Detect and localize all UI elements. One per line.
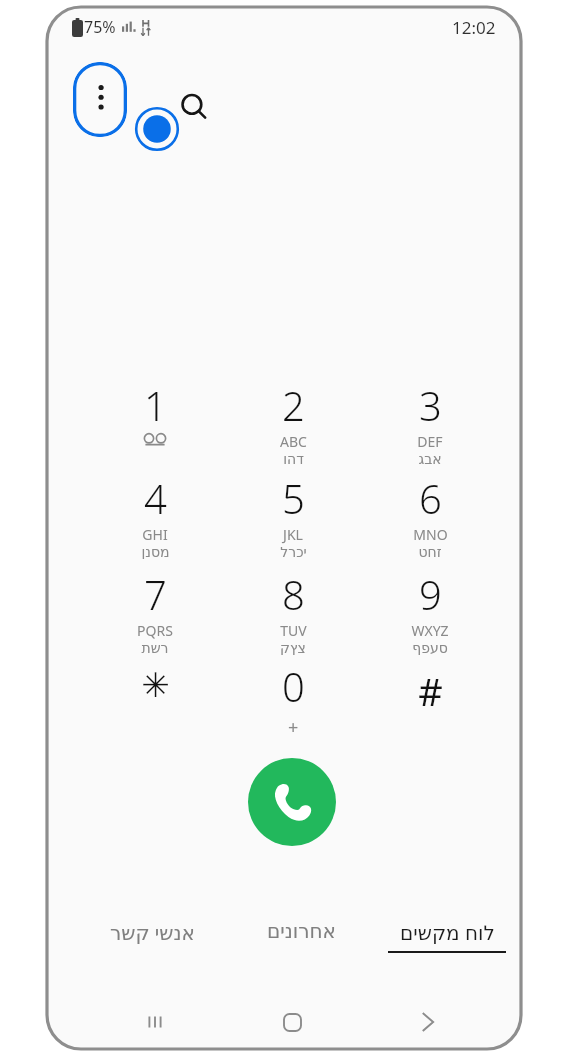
- button[interactable]: 8: [231, 567, 355, 655]
- staticText: 75%: [84, 16, 116, 38]
- button[interactable]: 1: [93, 378, 217, 466]
- staticText: מסנן: [141, 544, 170, 559]
- staticText: יכרל: [280, 544, 307, 559]
- staticText: PQRS: [137, 621, 173, 640]
- staticText: 8: [282, 567, 305, 621]
- button[interactable]: 2: [231, 378, 355, 466]
- staticText: WXYZ: [411, 621, 449, 640]
- staticText: ABC: [280, 432, 307, 451]
- button[interactable]: Recents: [129, 1000, 181, 1044]
- button[interactable]: 7: [93, 567, 217, 655]
- button[interactable]: Home: [266, 1000, 318, 1044]
- staticText: 9: [419, 567, 442, 621]
- staticText: DEF: [417, 432, 443, 451]
- button[interactable]: 3: [368, 378, 492, 466]
- staticText: 6: [419, 471, 442, 525]
- button[interactable]: לוח מקשים: [377, 919, 517, 971]
- staticText: MNO: [413, 525, 448, 544]
- button[interactable]: More options: [73, 62, 127, 137]
- button[interactable]: 4: [93, 471, 217, 559]
- staticText: לוח מקשים: [400, 919, 495, 946]
- staticText: אחרונים: [267, 919, 336, 942]
- staticText: סעפף: [412, 640, 448, 655]
- staticText: אבג: [418, 451, 442, 466]
- staticText: 0: [282, 659, 305, 713]
- button[interactable]: אנשי קשר: [77, 919, 227, 963]
- staticText: אנשי קשר: [110, 919, 195, 946]
- staticText: 4: [144, 471, 167, 525]
- button[interactable]: Back: [402, 1000, 454, 1044]
- staticText: 12:02: [452, 16, 496, 39]
- button[interactable]: אחרונים: [237, 919, 365, 963]
- staticText: 7: [144, 567, 167, 621]
- staticText: דהו: [283, 451, 304, 466]
- staticText: 2: [282, 378, 305, 432]
- staticText: זחט: [418, 544, 442, 559]
- staticText: +: [288, 715, 299, 740]
- button[interactable]: 0: [231, 659, 355, 747]
- staticText: JKL: [283, 525, 303, 544]
- button[interactable]: 6: [368, 471, 492, 559]
- staticText: TUV: [280, 621, 307, 640]
- staticText: GHI: [142, 525, 168, 544]
- staticText: צץק: [280, 640, 306, 655]
- button[interactable]: Call: [248, 758, 336, 846]
- staticText: 5: [282, 471, 305, 525]
- button[interactable]: ✳: [93, 659, 217, 747]
- staticText: רשת: [141, 640, 169, 655]
- button[interactable]: Search: [173, 86, 215, 128]
- staticText: #: [418, 665, 443, 717]
- staticText: 1: [144, 378, 167, 432]
- staticText: ✳: [141, 665, 170, 705]
- staticText: 3: [419, 378, 442, 432]
- button[interactable]: 5: [231, 471, 355, 559]
- button[interactable]: #: [368, 659, 492, 747]
- button[interactable]: 9: [368, 567, 492, 655]
